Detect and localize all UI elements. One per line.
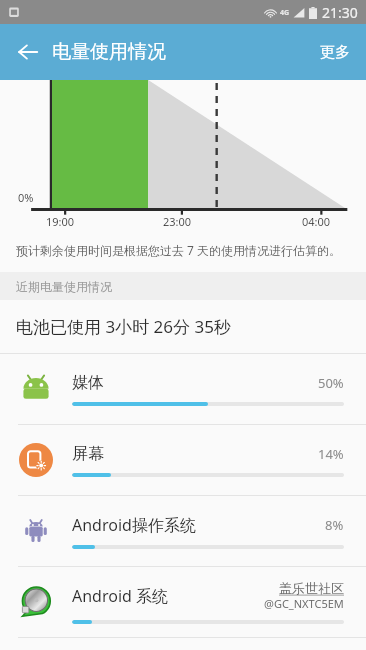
staticText: 4G <box>280 8 290 18</box>
staticText: 50% <box>318 374 344 392</box>
staticText: 近期电量使用情况 <box>16 279 112 294</box>
staticText: 电池已使用 3小时 26分 35秒 <box>16 315 231 338</box>
staticText: Android 系统 <box>72 585 264 607</box>
staticText: 电量使用情况 <box>52 40 166 64</box>
staticText: 更多 <box>320 43 350 62</box>
button[interactable]: 屏幕 <box>0 425 366 495</box>
staticText: 媒体 <box>72 373 318 393</box>
staticText: 预计剩余使用时间是根据您过去 7 天的使用情况进行估算的。 <box>16 242 342 258</box>
staticText: 04:00 <box>302 214 331 228</box>
staticText: 屏幕 <box>72 444 318 464</box>
staticText: @GC_NXTC5EM <box>264 596 344 611</box>
staticText: 0% <box>18 190 34 205</box>
staticText: 14% <box>318 445 344 463</box>
button[interactable]: 更多 <box>304 29 366 76</box>
button[interactable]: Android操作系统 <box>0 496 366 566</box>
staticText: 23:00 <box>163 214 192 228</box>
staticText: 盖乐世社区 <box>279 580 344 596</box>
staticText: 21:30 <box>322 3 358 22</box>
button[interactable]: Android 系统 <box>0 567 366 637</box>
button[interactable]: 媒体 <box>0 354 366 424</box>
staticText: 19:00 <box>46 214 75 228</box>
button[interactable]: Back <box>6 30 50 74</box>
staticText: 8% <box>325 516 344 534</box>
staticText: Android操作系统 <box>72 514 325 536</box>
